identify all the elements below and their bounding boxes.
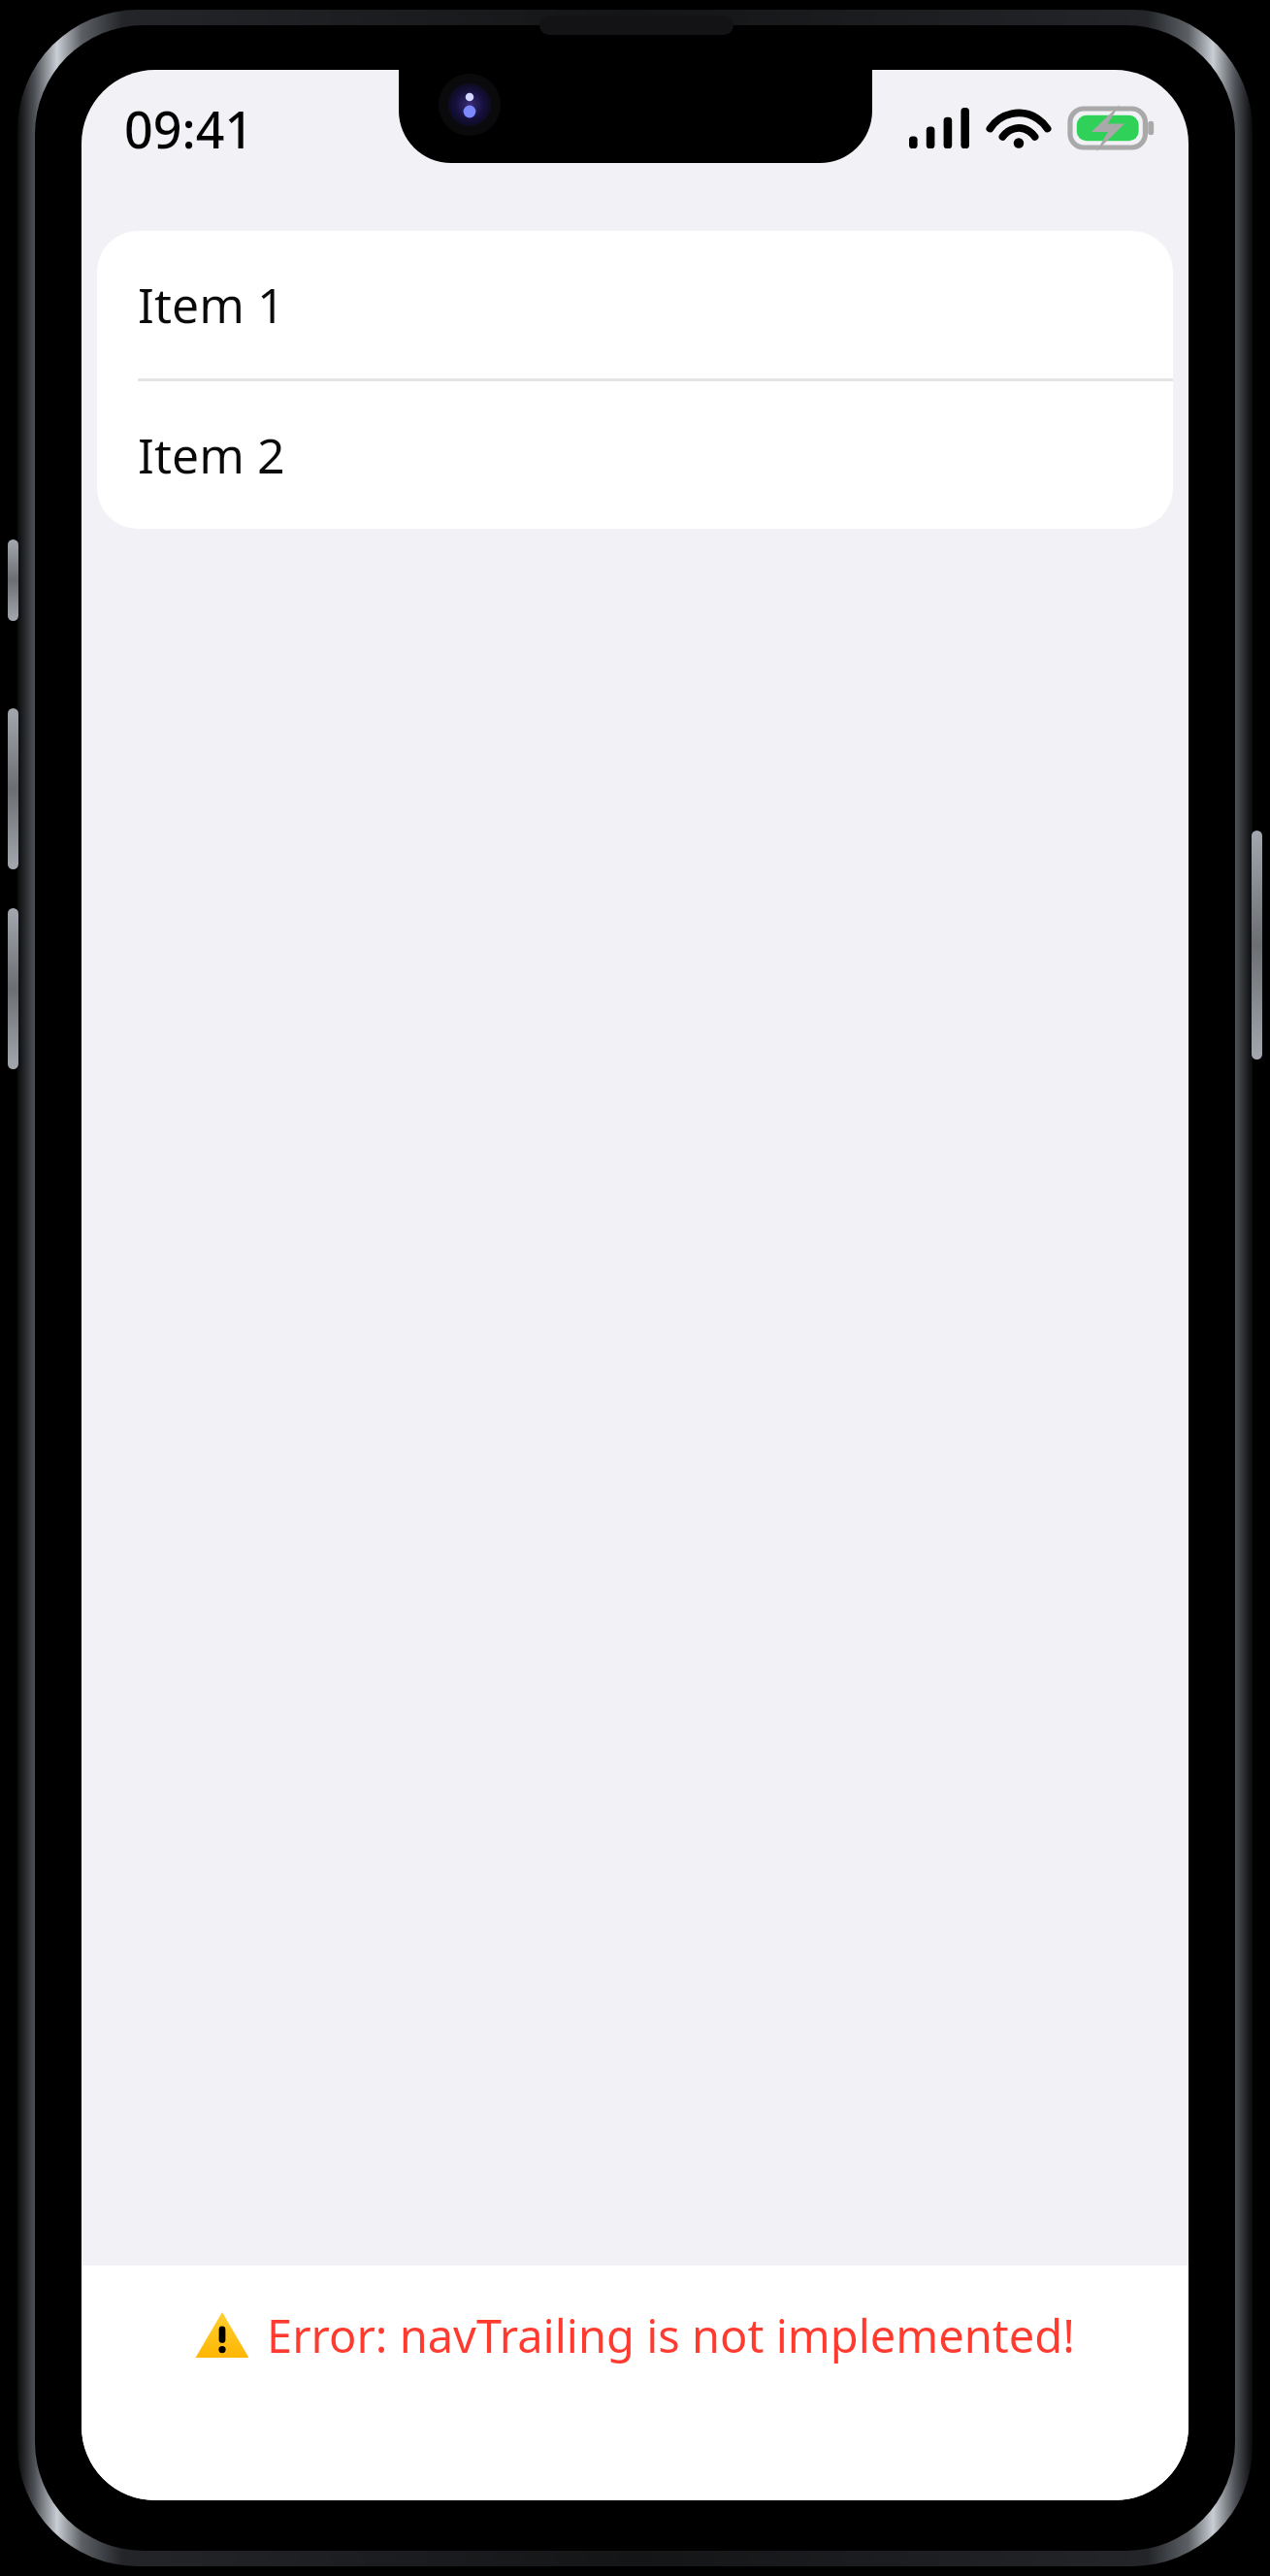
other: Cellular signal [909, 108, 969, 148]
other: Battery charging [1070, 109, 1154, 147]
other: Warning [195, 2308, 249, 2363]
button[interactable]: Item 2 [97, 381, 1173, 529]
other: Wi-Fi [991, 108, 1047, 148]
staticText: 09:41 [124, 94, 254, 163]
button[interactable]: Item 1 [97, 231, 1173, 378]
staticText: Error: navTrailing is not implemented! [267, 2304, 1075, 2366]
staticText: Item 1 [138, 272, 285, 338]
staticText: Item 2 [138, 422, 285, 488]
